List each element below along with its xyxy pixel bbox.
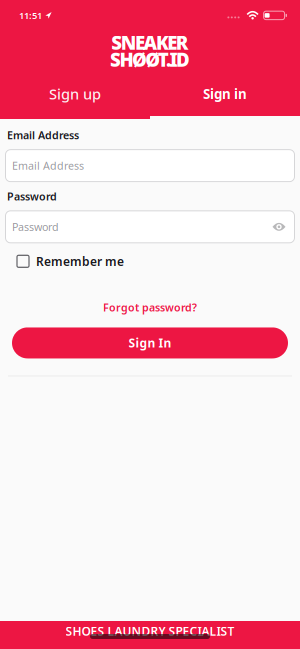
staticText: Password <box>12 220 59 234</box>
staticText: SHOES LAUNDRY SPECIALIST <box>65 623 234 639</box>
button[interactable]: Remember me <box>0 253 300 269</box>
staticText: Sign up <box>49 84 101 104</box>
button[interactable]: Sign in <box>150 80 300 120</box>
staticText: 11:51 <box>19 9 42 22</box>
staticText: Email Address <box>7 128 79 142</box>
staticText: Password <box>7 189 57 203</box>
staticText: Remember me <box>36 253 124 269</box>
staticText: SHØØT.ID <box>110 47 190 72</box>
staticText: Forgot password? <box>103 300 197 314</box>
button[interactable]: Show password <box>272 222 295 232</box>
staticText: Sign in <box>203 85 247 103</box>
staticText: Email Address <box>12 159 84 173</box>
staticText: Sign In <box>128 335 171 351</box>
staticText: SNEAKER <box>111 30 189 55</box>
button[interactable]: Sign up <box>0 80 150 120</box>
button[interactable]: Forgot password? <box>103 300 197 314</box>
button[interactable]: Sign In <box>0 327 300 358</box>
